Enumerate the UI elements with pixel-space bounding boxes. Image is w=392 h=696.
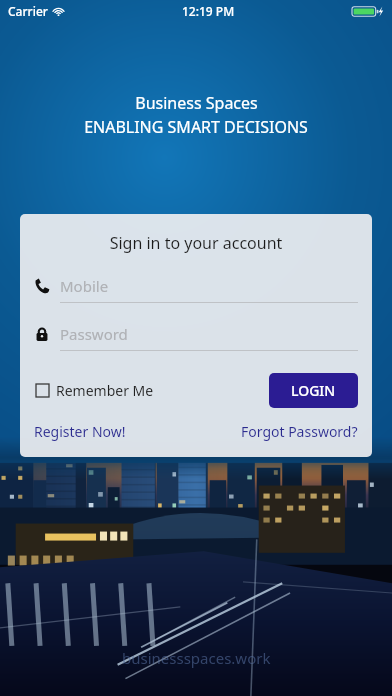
staticText: businessspaces.work [122, 648, 271, 668]
button[interactable]: Password [34, 324, 358, 351]
staticText: Remember Me [56, 381, 154, 400]
staticText: Mobile [60, 276, 109, 296]
button[interactable]: LOGIN [269, 373, 358, 408]
staticText: Register Now! [34, 422, 126, 441]
staticText: Carrier [8, 3, 48, 19]
button[interactable]: Remember Me [34, 377, 156, 404]
staticText: Forgot Password? [241, 422, 358, 441]
staticText: 12:19 PM [182, 3, 235, 19]
other: Mobile number [34, 278, 50, 294]
button[interactable]: Mobile number [34, 276, 358, 303]
button[interactable]: Register Now! [34, 420, 126, 443]
other: Password [34, 326, 50, 342]
button[interactable]: Forgot Password? [241, 420, 358, 443]
staticText: Business Spaces [135, 92, 258, 114]
staticText: Password [60, 324, 128, 344]
staticText: Sign in to your account [34, 232, 358, 254]
staticText: ENABLING SMART DECISIONS [84, 116, 308, 138]
staticText: LOGIN [291, 381, 336, 400]
